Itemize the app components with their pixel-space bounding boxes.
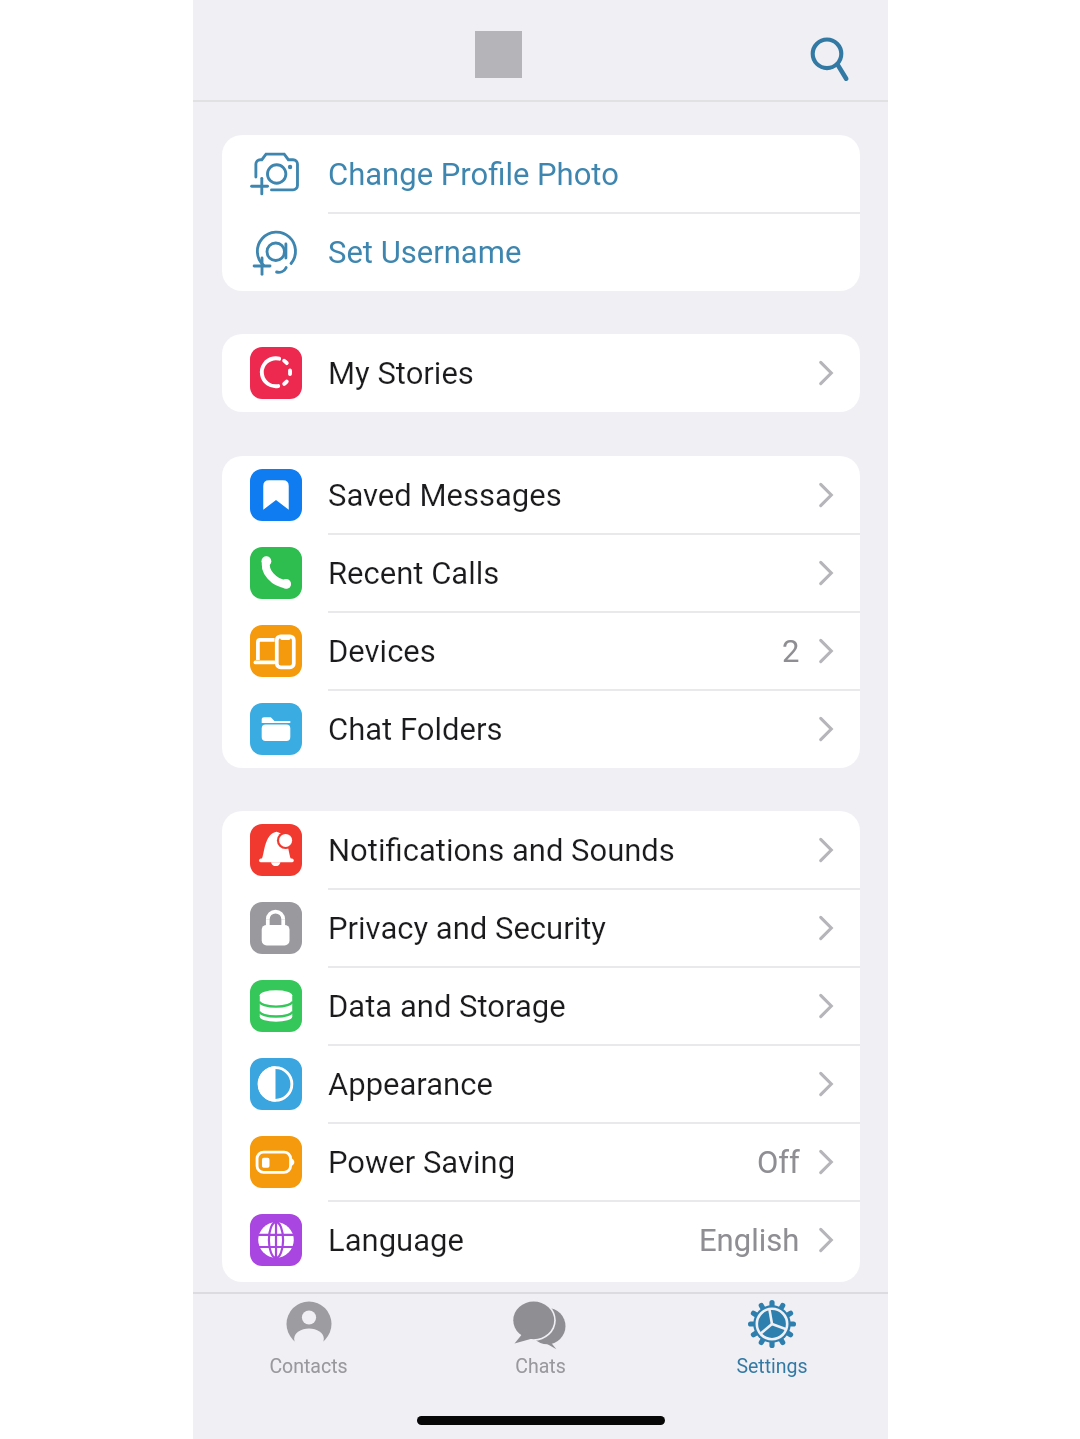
staticText: English — [699, 1222, 800, 1258]
staticText: Language — [328, 1222, 464, 1258]
button[interactable]: Devices — [222, 612, 860, 690]
button[interactable]: Notifications and Sounds — [222, 811, 860, 889]
staticText: Settings — [736, 1355, 808, 1378]
button[interactable]: Recent Calls — [222, 534, 860, 612]
staticText: 2 — [782, 633, 800, 669]
staticText: Saved Messages — [328, 477, 562, 513]
staticText: Recent Calls — [328, 555, 500, 591]
button[interactable]: My Stories — [222, 334, 860, 412]
button[interactable]: Search — [790, 17, 866, 93]
staticText: Chats — [515, 1355, 566, 1378]
staticText: Set Username — [328, 234, 522, 270]
staticText: Appearance — [328, 1066, 493, 1102]
staticText: Data and Storage — [328, 988, 566, 1024]
staticText: Devices — [328, 633, 436, 669]
staticText: Contacts — [269, 1355, 348, 1378]
staticText: My Stories — [328, 355, 474, 391]
staticText: Chat Folders — [328, 711, 503, 747]
button[interactable]: Appearance — [222, 1045, 860, 1123]
staticText: Notifications and Sounds — [328, 832, 675, 868]
button[interactable]: Chats — [424, 1294, 656, 1395]
button[interactable]: Chat Folders — [222, 690, 860, 768]
button[interactable]: Power Saving — [222, 1123, 860, 1201]
button[interactable]: Data and Storage — [222, 967, 860, 1045]
button[interactable]: Saved Messages — [222, 456, 860, 534]
staticText: Privacy and Security — [328, 910, 607, 946]
staticText: Change Profile Photo — [328, 156, 619, 192]
staticText: Power Saving — [328, 1144, 516, 1180]
staticText: Off — [757, 1144, 800, 1180]
button[interactable]: Privacy and Security — [222, 889, 860, 967]
button[interactable]: Set Username — [222, 213, 860, 291]
button[interactable]: Language — [222, 1201, 860, 1279]
button[interactable]: Change Profile Photo — [222, 135, 860, 213]
button[interactable]: Settings — [656, 1294, 888, 1395]
button[interactable]: Contacts — [193, 1294, 424, 1395]
